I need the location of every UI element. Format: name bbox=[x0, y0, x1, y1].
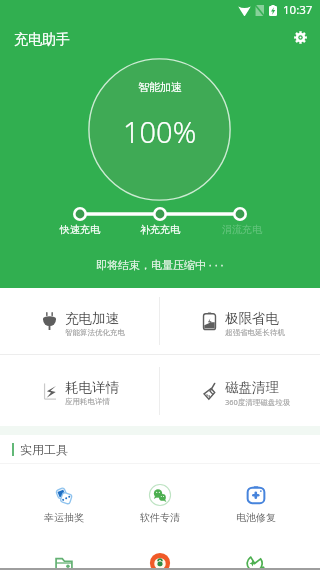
staticText: 实用工具 bbox=[20, 442, 68, 457]
staticText: 补充充电 bbox=[140, 223, 180, 236]
staticText: 即将结束，电量压缩中 · · · bbox=[96, 257, 224, 272]
button[interactable]: 软件专清 bbox=[112, 464, 208, 532]
staticText: 幸运抽奖 bbox=[44, 511, 84, 524]
staticText: 电池修复 bbox=[236, 511, 276, 524]
button[interactable]: 耗电详情 bbox=[0, 355, 159, 426]
button[interactable]: 极限省电 bbox=[160, 288, 320, 354]
staticText: 智能算法优化充电 bbox=[65, 328, 125, 337]
staticText: 充电加速 bbox=[65, 310, 119, 327]
staticText: 快速充电 bbox=[60, 223, 100, 236]
staticText: 智能加速 bbox=[138, 80, 182, 94]
button[interactable]: 电池修复 bbox=[208, 464, 304, 532]
button[interactable]: 磁盘清理 bbox=[160, 355, 320, 426]
staticText: 涓流充电 bbox=[222, 223, 262, 236]
button[interactable]: Settings bbox=[286, 23, 314, 51]
button[interactable]: 充电加速 bbox=[0, 288, 159, 354]
staticText: 100% bbox=[123, 112, 197, 151]
staticText: 充电助手 bbox=[14, 31, 70, 49]
button[interactable]: 游戏加速 bbox=[208, 532, 304, 570]
staticText: 磁盘清理 bbox=[225, 379, 279, 396]
staticText: 360度清理磁盘垃圾 bbox=[225, 397, 291, 407]
button[interactable]: 隐私保护 bbox=[112, 532, 208, 570]
staticText: 10:37 bbox=[283, 2, 313, 18]
staticText: 超强省电延长待机 bbox=[225, 328, 285, 337]
staticText: 软件专清 bbox=[140, 511, 180, 524]
staticText: 极限省电 bbox=[225, 310, 279, 327]
button[interactable]: 幸运抽奖 bbox=[16, 464, 112, 532]
staticText: 应用耗电详情 bbox=[65, 397, 110, 406]
button[interactable]: 文件清理 bbox=[16, 532, 112, 570]
staticText: 耗电详情 bbox=[65, 379, 119, 396]
